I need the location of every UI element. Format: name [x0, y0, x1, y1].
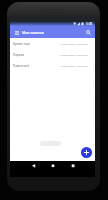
button[interactable]: Помню всё [10, 60, 95, 71]
staticText: 5:08 [86, 22, 93, 26]
staticText: Мои заметки [22, 30, 45, 35]
staticText: 13 мая 2019 г. 5:08:10:47 [60, 64, 89, 67]
staticText: Купить торт [13, 42, 31, 46]
button[interactable]: Search [83, 27, 94, 38]
button[interactable]: Add note [81, 147, 92, 158]
staticText: Пароли [13, 53, 25, 57]
button[interactable]: Купить торт [10, 38, 95, 49]
staticText: 13 мая 2019 г. 5:08:10:47 [60, 53, 89, 56]
button[interactable]: Пароли [10, 49, 95, 60]
staticText: Помню всё [13, 64, 30, 68]
staticText: 13 мая 2019 г. 5:08:10:47 [60, 42, 89, 45]
button[interactable]: Open navigation drawer [12, 28, 21, 37]
